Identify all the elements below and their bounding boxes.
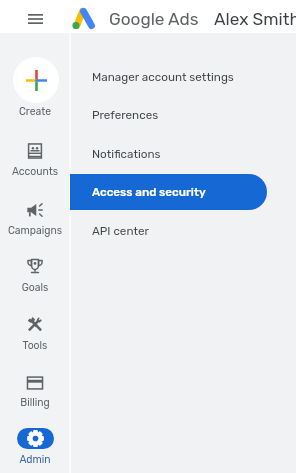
button[interactable] bbox=[0, 196, 70, 230]
button[interactable] bbox=[0, 369, 70, 403]
staticText: Billing bbox=[0, 396, 70, 408]
button[interactable] bbox=[0, 310, 70, 344]
staticText: Goals bbox=[0, 281, 70, 293]
staticText: Manager account settings bbox=[92, 70, 234, 84]
staticText: Accounts bbox=[0, 165, 70, 177]
staticText: Admin bbox=[0, 453, 70, 465]
button[interactable]: Notifications bbox=[70, 136, 267, 172]
button[interactable] bbox=[0, 137, 70, 171]
button[interactable] bbox=[0, 252, 70, 286]
button[interactable]: Admin bbox=[17, 428, 54, 449]
button[interactable]: Create bbox=[13, 57, 59, 103]
button[interactable]: API center bbox=[70, 213, 267, 249]
staticText: Create bbox=[0, 105, 70, 117]
staticText: Notifications bbox=[92, 147, 161, 161]
staticText: Preferences bbox=[92, 108, 159, 122]
button[interactable]: Manager account settings bbox=[70, 59, 267, 95]
button[interactable]: Preferences bbox=[70, 97, 267, 133]
button[interactable]: Access and security bbox=[70, 174, 267, 210]
staticText: Campaigns bbox=[0, 224, 70, 236]
staticText: Google bbox=[109, 9, 165, 29]
staticText: Tools bbox=[0, 339, 70, 351]
button[interactable]: Main menu bbox=[22, 7, 48, 31]
staticText: Ads bbox=[168, 9, 199, 29]
staticText: Access and security bbox=[92, 185, 206, 199]
staticText: API center bbox=[92, 224, 149, 238]
staticText: Alex Smith bbox=[214, 9, 296, 29]
